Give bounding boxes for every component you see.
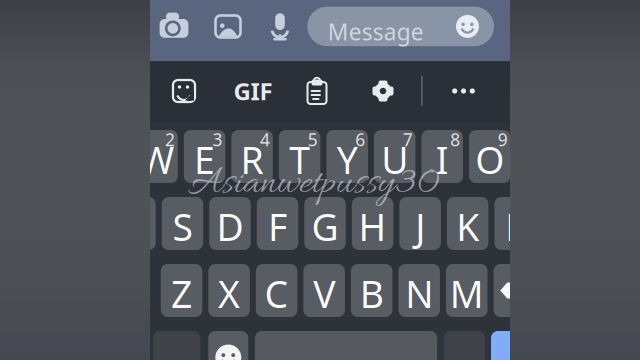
button[interactable]: M (446, 264, 487, 317)
button[interactable]: GIF (233, 79, 273, 103)
button[interactable]: Camera (159, 13, 189, 39)
button[interactable]: X (208, 264, 250, 317)
button[interactable]: J (399, 197, 441, 250)
staticText: 9 (498, 128, 508, 151)
staticText: U (381, 135, 408, 184)
staticText: J (415, 202, 425, 251)
staticText: S (172, 202, 192, 251)
staticText: 6 (355, 128, 365, 151)
button[interactable]: Z (161, 264, 202, 317)
staticText: R (241, 135, 264, 184)
staticText: 7 (403, 128, 413, 151)
button[interactable]: Stickers (172, 79, 196, 103)
staticText: 2 (165, 128, 175, 151)
staticText: T (289, 135, 310, 184)
button[interactable]: Send (491, 331, 532, 360)
button[interactable]: F (257, 197, 298, 250)
staticText: F (268, 202, 287, 251)
staticText: N (405, 269, 433, 318)
button[interactable]: Emoji (208, 331, 248, 360)
staticText: 4 (260, 128, 270, 151)
button[interactable]: A (114, 197, 156, 250)
button[interactable]: Photos (214, 14, 242, 38)
button[interactable]: C (256, 264, 297, 317)
staticText: 5 (308, 128, 318, 151)
button[interactable]: I (421, 130, 463, 183)
staticText: C (265, 269, 289, 318)
staticText: Message (328, 17, 424, 47)
button[interactable]: Settings (371, 79, 395, 103)
button[interactable]: S (162, 197, 203, 250)
button[interactable]: K (447, 197, 488, 250)
staticText: H (359, 202, 387, 251)
button[interactable]: E (184, 130, 225, 183)
button[interactable]: Voice message (268, 11, 292, 41)
staticText: O (475, 135, 504, 184)
staticText: B (360, 269, 384, 318)
staticText: GIF (233, 75, 272, 107)
staticText: G (312, 202, 339, 251)
button[interactable]: G (304, 197, 346, 250)
staticText: E (194, 135, 215, 184)
button[interactable]: T (279, 130, 320, 183)
staticText: I (436, 135, 449, 184)
button[interactable]: B (351, 264, 392, 317)
button[interactable]: O (469, 130, 510, 183)
staticText: Y (337, 135, 358, 184)
button[interactable]: L (494, 197, 536, 250)
staticText: 3 (213, 128, 223, 151)
staticText: Asianwetpussy30 (188, 159, 439, 209)
staticText: L (505, 202, 525, 251)
button[interactable]: Y (326, 130, 368, 183)
button[interactable]: U (374, 130, 415, 183)
button[interactable]: H (352, 197, 393, 250)
staticText: D (216, 202, 243, 251)
button[interactable]: D (209, 197, 251, 250)
staticText: M (450, 269, 484, 318)
button[interactable]: V (303, 264, 345, 317)
button[interactable]: Clipboard (305, 77, 329, 105)
staticText: 8 (450, 128, 460, 151)
staticText: V (313, 269, 335, 318)
staticText: X (218, 269, 240, 318)
staticText: Z (171, 269, 192, 318)
staticText: W (140, 135, 175, 184)
button[interactable]: More (450, 79, 477, 103)
button[interactable]: Message (307, 7, 494, 46)
button[interactable]: R (231, 130, 273, 183)
button[interactable]: Backspace (493, 264, 535, 317)
button[interactable]: N (398, 264, 440, 317)
button[interactable]: W (136, 130, 178, 183)
staticText: K (456, 202, 479, 251)
